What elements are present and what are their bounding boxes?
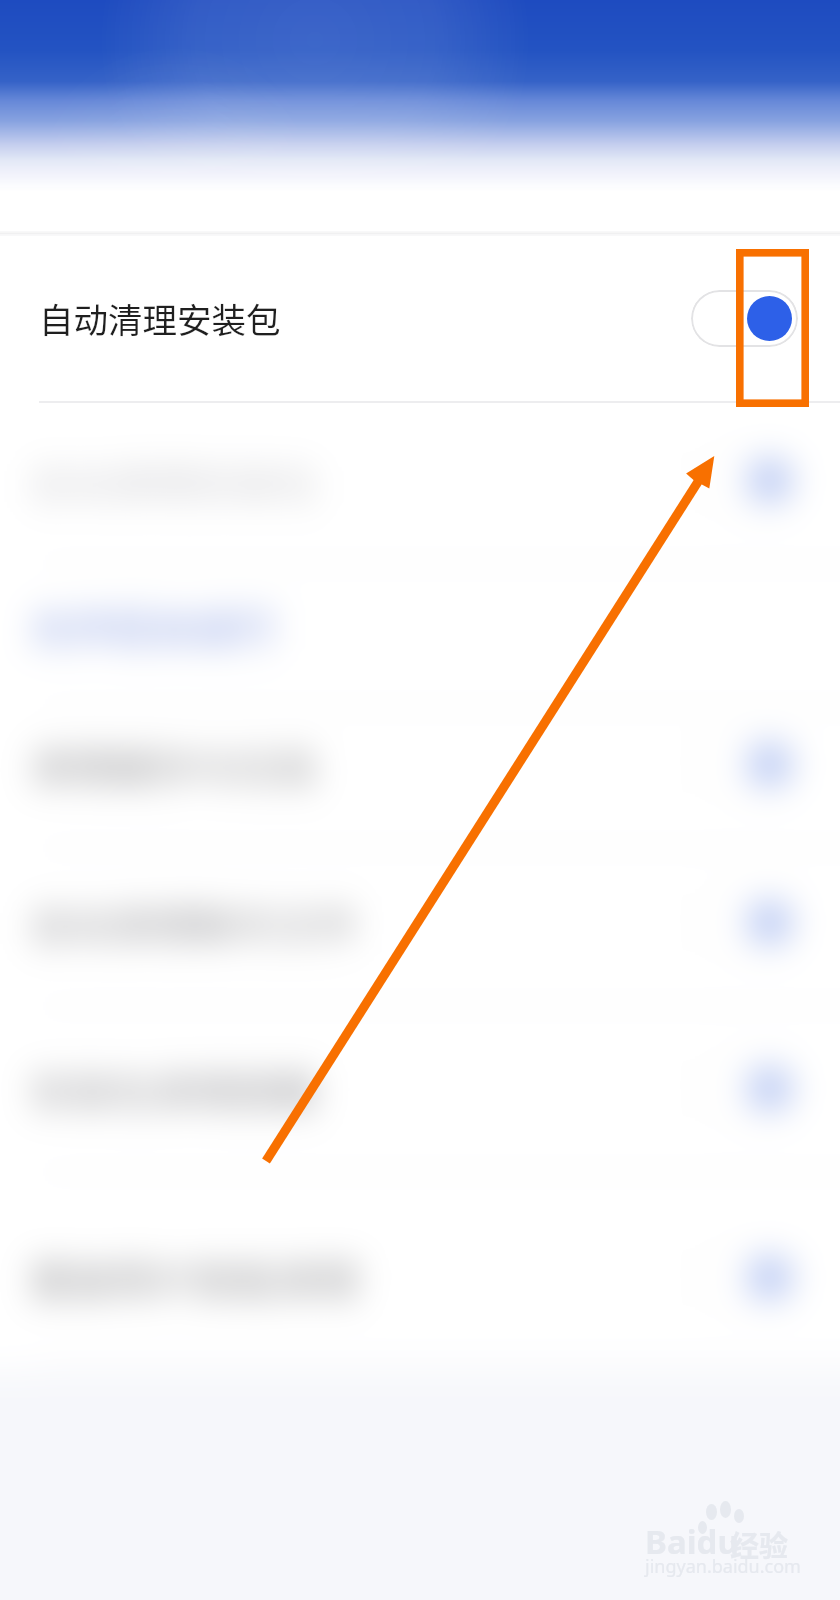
button[interactable]: 安装包清理提醒 <box>691 1060 798 1117</box>
button[interactable]: 安装包清理提醒 <box>0 1003 840 1173</box>
staticText: 安装包清理提醒 <box>30 1059 317 1118</box>
button[interactable]: 自动清理安装包 <box>0 233 840 403</box>
button[interactable]: 自动清理聊天文件 <box>691 894 798 951</box>
staticText: 清理缓存与垃圾 <box>30 735 317 794</box>
button[interactable]: 清理缓存与垃圾 <box>0 679 840 849</box>
staticText: 经验 <box>730 1523 789 1565</box>
staticText: 自动清理聊天文件 <box>30 893 358 952</box>
staticText: 允许后台运行 <box>30 595 276 654</box>
staticText: jingyan.baidu.com <box>645 1554 801 1579</box>
button[interactable]: 允许后台运行 <box>0 539 840 709</box>
button[interactable]: 重复照片智能清理 <box>691 1249 798 1306</box>
button[interactable]: Auto clean installation packages, on <box>691 290 798 347</box>
button[interactable]: 清理缓存与垃圾 <box>691 736 798 793</box>
button[interactable]: 自动清理安装包 <box>691 452 798 509</box>
button[interactable]: 自动清理聊天文件 <box>0 837 840 1007</box>
staticText: Baidu <box>645 1519 739 1564</box>
staticText: 重复照片智能清理 <box>30 1248 358 1307</box>
button[interactable]: 自动清理安装包 <box>0 395 840 565</box>
staticText: 自动清理安装包 <box>39 293 281 343</box>
button[interactable]: 重复照片智能清理 <box>0 1192 840 1362</box>
